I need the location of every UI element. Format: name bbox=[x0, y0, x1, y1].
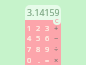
staticText: 2 bbox=[36, 23, 41, 33]
button[interactable]: 7 bbox=[25, 43, 34, 54]
button[interactable]: 1 bbox=[25, 23, 34, 33]
staticText: 4 bbox=[27, 33, 32, 43]
button[interactable]: × bbox=[52, 54, 61, 65]
staticText: 0 bbox=[27, 55, 32, 65]
button[interactable]: 0 bbox=[25, 54, 34, 65]
button[interactable]: 5 bbox=[34, 33, 43, 43]
button[interactable]: 9 bbox=[43, 43, 52, 54]
staticText: . bbox=[38, 55, 40, 65]
staticText: 8 bbox=[36, 44, 41, 54]
staticText: = bbox=[45, 55, 50, 65]
button[interactable]: 2 bbox=[34, 23, 43, 33]
staticText: + bbox=[54, 23, 59, 33]
staticText: × bbox=[54, 55, 59, 65]
staticText: 3 bbox=[45, 23, 50, 33]
button[interactable]: 3 bbox=[43, 23, 52, 33]
staticText: 9 bbox=[45, 44, 50, 54]
button[interactable]: + bbox=[52, 23, 61, 33]
button[interactable]: − bbox=[52, 33, 61, 43]
button[interactable]: Clear bbox=[53, 17, 61, 25]
staticText: 1 bbox=[27, 23, 32, 33]
staticText: 5 bbox=[36, 33, 41, 43]
button[interactable]: 6 bbox=[43, 33, 52, 43]
staticText: C bbox=[55, 17, 59, 25]
button[interactable]: = bbox=[43, 54, 52, 65]
staticText: 3.14159 bbox=[27, 7, 60, 19]
button[interactable]: . bbox=[34, 54, 43, 65]
staticText: − bbox=[54, 33, 59, 43]
staticText: 7 bbox=[27, 44, 32, 54]
staticText: 6 bbox=[45, 33, 50, 43]
button[interactable]: 8 bbox=[34, 43, 43, 54]
staticText: ÷ bbox=[54, 44, 59, 54]
button[interactable]: 4 bbox=[25, 33, 34, 43]
button[interactable]: ÷ bbox=[52, 43, 61, 54]
